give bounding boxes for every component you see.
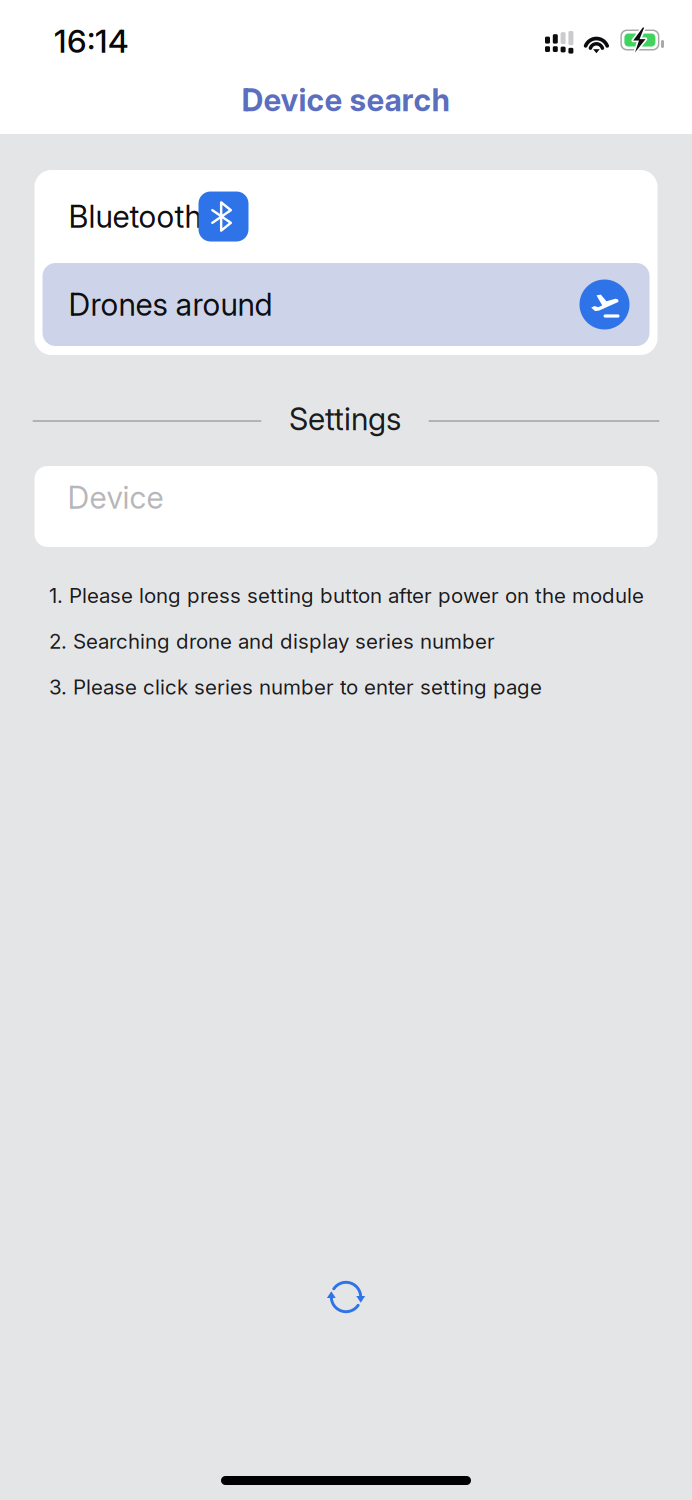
staticText: Device search xyxy=(241,81,450,118)
staticText: Device xyxy=(67,479,163,516)
staticText: 2. Searching drone and display series nu… xyxy=(49,629,495,654)
staticText: 16:14 xyxy=(54,22,129,60)
button[interactable]: Refresh xyxy=(306,1257,386,1337)
staticText: Bluetooth xyxy=(68,198,201,235)
button[interactable]: Drones around xyxy=(42,263,649,346)
button[interactable]: Device xyxy=(34,466,657,547)
staticText: 3. Please click series number to enter s… xyxy=(49,675,542,699)
staticText: Settings xyxy=(289,400,401,437)
staticText: Drones around xyxy=(68,286,272,323)
staticText: 1. Please long press setting button afte… xyxy=(49,583,644,608)
button[interactable]: Bluetooth xyxy=(34,170,657,263)
